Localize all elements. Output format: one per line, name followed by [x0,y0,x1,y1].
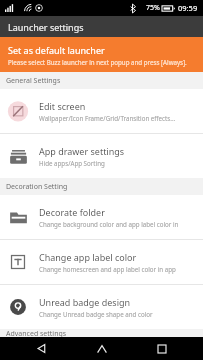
staticText: Change background color and app label co… [39,220,197,228]
staticText: Unread badge design [39,296,131,308]
staticText: 09:59 [178,3,198,13]
staticText: Change app label color [39,251,137,263]
staticText: Decorate folder [39,206,105,218]
staticText: Wallpaper/Icon Frame/Grid/Transition eff… [39,114,176,122]
staticText: Change homescreen and app label color in… [39,265,197,273]
button[interactable]: Change app label color [0,240,203,284]
staticText: General Settings [6,76,61,86]
staticText: App drawer settings [39,145,125,157]
staticText: Launcher settings [8,21,84,33]
staticText: 75% [146,3,160,13]
staticText: Change Unread badge shape and color [39,310,153,318]
button[interactable]: Edit screen [0,89,203,133]
button[interactable]: App drawer settings [0,134,203,178]
button[interactable]: Back [21,337,61,360]
staticText: Decoration Setting [6,182,68,192]
staticText: Advanced settings [6,329,67,337]
button[interactable]: Decorate folder [0,195,203,239]
button[interactable]: Set as default launcher [0,37,203,72]
staticText: Hide apps/App Sorting [39,159,105,167]
staticText: Set as default launcher [8,44,105,56]
button[interactable]: Unread badge design [0,285,203,329]
button[interactable]: Home [82,337,122,360]
staticText: Please select Buzz launcher in next popu… [8,58,187,66]
staticText: Edit screen [39,100,86,112]
button[interactable]: Recent apps [142,337,182,360]
